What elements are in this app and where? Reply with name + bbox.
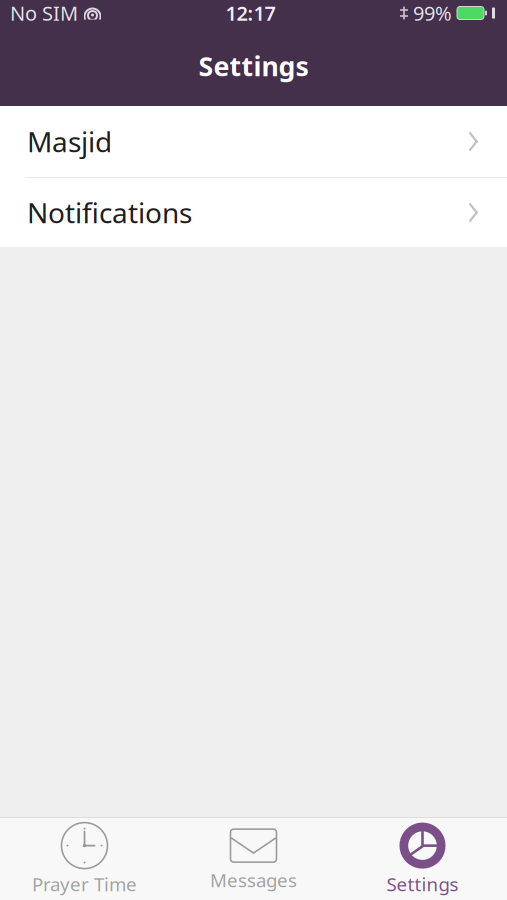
staticText: 12:17 bbox=[225, 0, 275, 26]
button[interactable]: Notifications bbox=[0, 178, 507, 247]
button[interactable]: Messages bbox=[169, 818, 338, 900]
staticText: No SIM bbox=[10, 0, 78, 26]
button[interactable]: Prayer Time bbox=[0, 818, 169, 900]
staticText: Masjid bbox=[27, 123, 112, 160]
button[interactable]: Masjid bbox=[0, 106, 507, 177]
staticText: Messages bbox=[210, 868, 297, 892]
staticText: 99% bbox=[413, 0, 452, 26]
staticText: Prayer Time bbox=[32, 872, 137, 896]
staticText: Settings bbox=[386, 872, 458, 896]
staticText: Notifications bbox=[27, 194, 192, 231]
button[interactable]: Settings bbox=[338, 818, 507, 900]
staticText: Settings bbox=[198, 48, 308, 84]
